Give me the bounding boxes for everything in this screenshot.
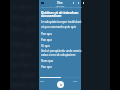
staticText: consectetur adipiscing elit sed do eiusm [41, 6, 83, 9]
staticText: Ut quo [41, 44, 50, 48]
staticText: 3:05 [73, 80, 77, 83]
staticText: Titre [57, 1, 63, 5]
staticText: accusantium [41, 14, 62, 18]
staticText: sous-titre [56, 5, 65, 8]
button[interactable]: Bookmark [77, 1, 80, 4]
staticText: natus error sit voluptatem accus [41, 53, 83, 57]
staticText: Pan quo [41, 65, 52, 69]
button[interactable]: Play [57, 81, 64, 88]
staticText: Pan quo [41, 32, 52, 36]
button[interactable] [40, 77, 80, 78]
staticText: 0:42 [40, 80, 44, 83]
button[interactable]: More options [82, 1, 85, 4]
staticText: Pan quo [41, 38, 52, 42]
staticText: Sed ut perspiciatis unde omnis iste [41, 49, 83, 53]
staticText: Nam quo [41, 59, 54, 63]
staticText: ut quo commodo quis quis [41, 25, 77, 29]
button[interactable]: Search [72, 1, 75, 4]
button[interactable]: Back [40, 0, 45, 6]
staticText: In voluptate tempor incididunt labore et [41, 20, 83, 24]
staticText: Quidem ut sit interdum consectetur [41, 11, 83, 15]
